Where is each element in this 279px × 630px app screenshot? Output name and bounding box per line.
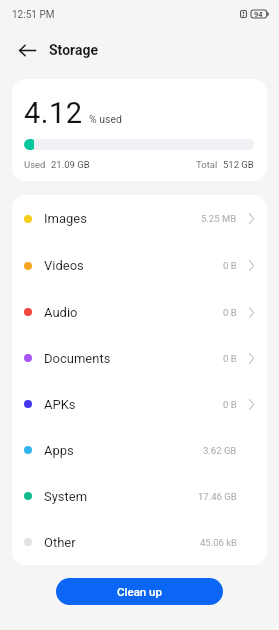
staticText: % used (89, 113, 122, 125)
staticText: 94 (254, 10, 263, 18)
staticText: 12:51 PM (12, 9, 55, 21)
staticText: 17.46 GB (198, 491, 237, 502)
staticText: Used (24, 159, 46, 170)
staticText: 5.25 MB (201, 213, 237, 224)
staticText: 512 GB (223, 159, 254, 170)
staticText: System (44, 489, 88, 504)
staticText: Images (44, 211, 87, 226)
button[interactable]: Back (5, 26, 49, 74)
staticText: Clean up (117, 585, 162, 598)
staticText: 3.62 GB (203, 445, 237, 456)
staticText: 45.06 kB (200, 537, 237, 548)
staticText: 21.09 GB (51, 159, 90, 170)
staticText: 0 B (223, 307, 237, 318)
staticText: 0 B (223, 260, 237, 271)
staticText: 0 B (223, 399, 237, 410)
button[interactable]: System (12, 473, 267, 519)
button[interactable]: Images (12, 195, 267, 242)
button[interactable]: Audio (12, 289, 267, 335)
staticText: 4.12 (24, 96, 83, 130)
staticText: Other (44, 535, 76, 550)
staticText: Documents (44, 351, 111, 366)
staticText: Total (196, 159, 218, 170)
staticText: Videos (44, 258, 84, 273)
staticText: Audio (44, 305, 78, 320)
button[interactable]: Documents (12, 335, 267, 381)
button[interactable]: Clean up (56, 578, 223, 605)
button[interactable]: Videos (12, 242, 267, 289)
staticText: 0 B (223, 353, 237, 364)
button[interactable]: Other (12, 519, 267, 565)
button[interactable]: Apps (12, 427, 267, 473)
staticText: Apps (44, 443, 74, 458)
staticText: Storage (49, 42, 99, 58)
button[interactable]: APKs (12, 381, 267, 427)
staticText: APKs (44, 397, 76, 412)
